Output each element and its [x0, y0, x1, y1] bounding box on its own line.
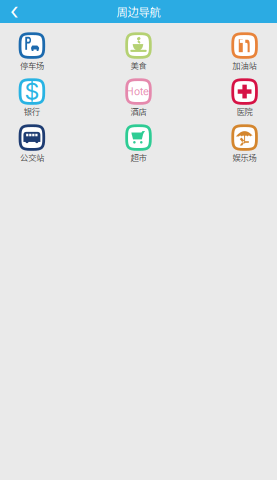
button[interactable]: 超市: [0, 0, 277, 480]
staticText: 酒店: [130, 105, 146, 117]
staticText: Hotel: [126, 85, 151, 98]
button[interactable]: 医院: [0, 0, 277, 480]
staticText: 医院: [237, 105, 253, 117]
staticText: 停车场: [20, 59, 44, 71]
button[interactable]: 美食: [0, 0, 277, 480]
button[interactable]: 公交站: [0, 0, 277, 480]
staticText: 银行: [24, 105, 40, 117]
button[interactable]: 娱乐场: [0, 0, 277, 480]
staticText: 公交站: [20, 151, 44, 163]
staticText: 周边导航: [116, 3, 160, 20]
staticText: 娱乐场: [233, 151, 257, 163]
button[interactable]: Back: [0, 0, 28, 23]
button[interactable]: Hotel: [0, 0, 277, 480]
staticText: 加油站: [233, 59, 257, 71]
button[interactable]: $: [0, 0, 277, 480]
staticText: $: [24, 77, 39, 105]
button[interactable]: 加油站: [0, 0, 277, 480]
staticText: ‹: [10, 0, 18, 25]
staticText: 超市: [130, 151, 146, 163]
staticText: 美食: [130, 59, 146, 71]
button[interactable]: 停车场: [0, 0, 277, 480]
